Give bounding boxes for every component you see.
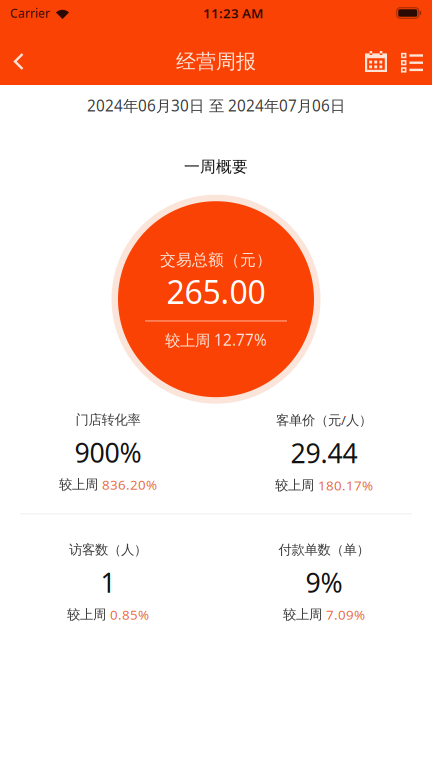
staticText: 较上周 [275, 477, 314, 494]
staticText: 900% [74, 434, 141, 470]
staticText: Carrier [10, 5, 50, 21]
staticText: 交易总额（元） [160, 250, 272, 270]
staticText: 较上周 [59, 476, 98, 493]
button[interactable]: Back [0, 32, 38, 91]
staticText: 客单价（元/人） [276, 411, 372, 429]
staticText: 门店转化率 [75, 411, 140, 428]
staticText: 较上周 [283, 606, 322, 623]
staticText: 0.85% [110, 605, 149, 624]
staticText: 较上周 12.77% [165, 329, 267, 350]
staticText: 836.20% [102, 475, 157, 494]
staticText: 265.00 [166, 270, 265, 313]
staticText: 1 [100, 564, 115, 600]
staticText: 访客数（人） [69, 541, 147, 558]
staticText: 较上周 [67, 606, 106, 623]
staticText: 经营周报 [176, 49, 256, 74]
staticText: 一周概要 [184, 157, 248, 177]
staticText: 付款单数（单） [278, 541, 369, 558]
staticText: 9% [305, 564, 342, 600]
staticText: 11:23 AM [203, 4, 263, 22]
staticText: 2024年06月30日 至 2024年07月06日 [87, 95, 345, 116]
staticText: 29.44 [290, 435, 357, 471]
staticText: 180.17% [318, 476, 373, 494]
staticText: 7.09% [326, 605, 365, 624]
button[interactable]: Reports list [393, 32, 431, 91]
button[interactable]: Calendar [359, 32, 393, 91]
